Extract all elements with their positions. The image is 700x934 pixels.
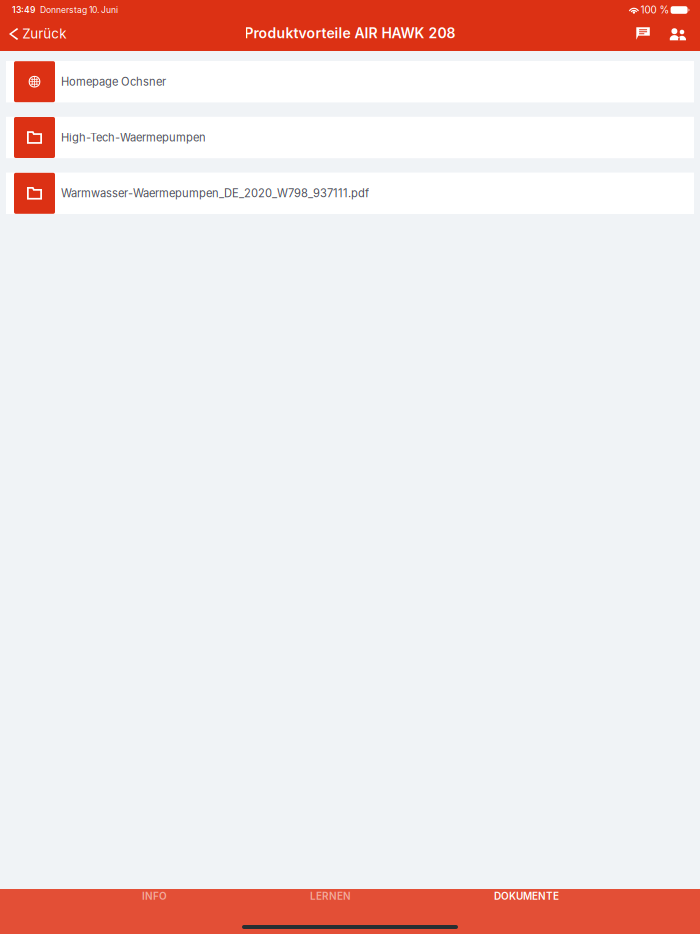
staticText: 13:49 [12,5,35,15]
staticText: Warmwasser-Waermepumpen_DE_2020_W798_937… [61,187,369,200]
button[interactable]: Homepage Ochsner [6,61,694,102]
button[interactable]: Zurück [0,23,72,48]
staticText: High-Tech-Waermepumpen [61,131,206,144]
staticText: Homepage Ochsner [61,75,166,88]
button[interactable]: Contacts [658,25,694,46]
button[interactable]: High-Tech-Waermepumpen [6,117,694,158]
staticText: 100 % [641,4,670,16]
button[interactable]: Warmwasser-Waermepumpen_DE_2020_W798_937… [6,173,694,214]
staticText: LERNEN [310,890,351,902]
staticText: Zurück [22,26,66,42]
staticText: Produktvorteile AIR HAWK 208 [244,25,455,42]
button[interactable]: Messages [628,25,658,46]
button[interactable]: LERNEN [254,889,406,921]
button[interactable]: INFO [54,889,254,921]
button[interactable]: DOKUMENTE [406,889,646,921]
staticText: INFO [142,890,167,902]
staticText: DOKUMENTE [494,890,559,902]
staticText: Donnerstag 10. Juni [40,5,118,15]
